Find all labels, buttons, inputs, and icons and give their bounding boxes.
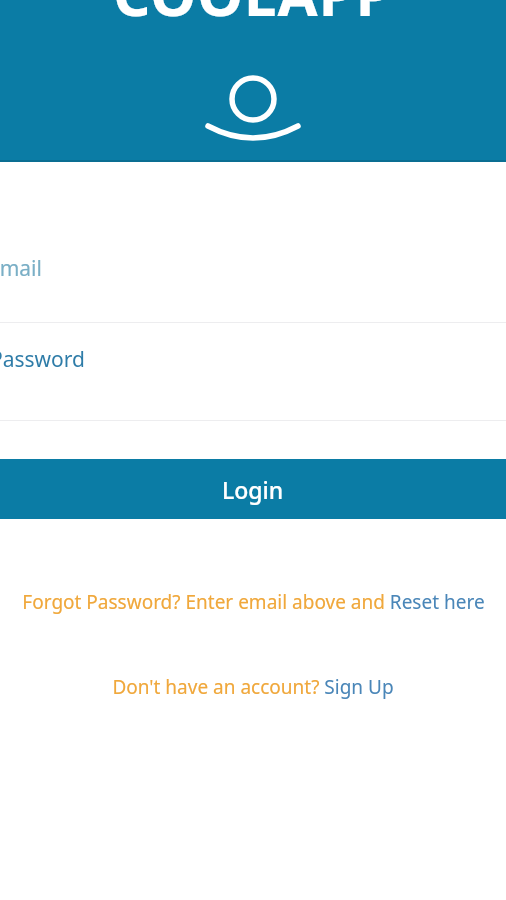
button[interactable]: Password [0,323,506,420]
button[interactable]: Don't have an account? Sign Up [0,666,506,708]
button[interactable]: Email [0,162,506,322]
staticText: COOLAPP [0,0,506,33]
button[interactable]: Login [0,459,506,519]
staticText: Login [222,474,284,505]
staticText: Don't have an account? Sign Up [112,674,394,700]
other: App logo [203,70,303,145]
button[interactable]: Forgot Password? Enter email above and R… [0,581,506,623]
staticText: Email [0,254,42,283]
staticText: Forgot Password? Enter email above and R… [22,589,485,615]
staticText: Password [0,345,85,374]
